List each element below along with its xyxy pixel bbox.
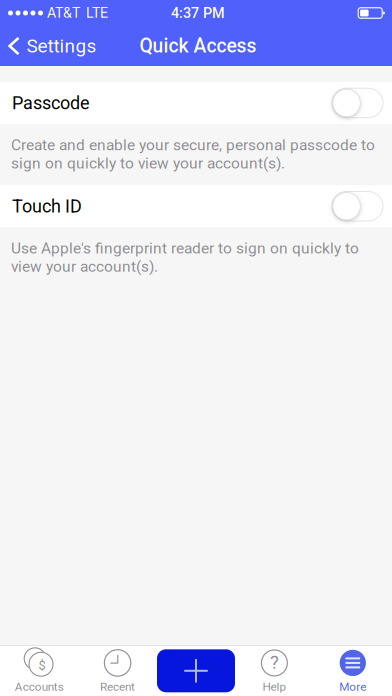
staticText: Touch ID: [12, 196, 82, 217]
staticText: Create and enable your secure, personal …: [11, 136, 375, 172]
button[interactable]: Recent: [78, 645, 157, 696]
staticText: Passcode: [12, 92, 90, 114]
staticText: $: [38, 658, 45, 673]
staticText: 4:37 PM: [171, 5, 225, 21]
staticText: Quick Access: [139, 35, 256, 57]
staticText: LTE: [86, 5, 108, 21]
staticText: Recent: [100, 680, 135, 694]
button[interactable]: More: [314, 645, 392, 696]
staticText: Settings: [26, 35, 96, 57]
staticText: AT&T: [47, 5, 80, 21]
button[interactable]: $: [0, 645, 78, 696]
staticText: Help: [262, 680, 286, 694]
staticText: More: [339, 680, 366, 694]
staticText: ?: [270, 651, 279, 673]
button[interactable]: Settings: [0, 29, 106, 63]
button[interactable]: ?: [235, 645, 314, 696]
staticText: Accounts: [15, 680, 64, 694]
button[interactable]: Touch ID: [0, 185, 392, 227]
button[interactable]: Add: [157, 645, 235, 696]
button[interactable]: Passcode: [0, 82, 392, 124]
staticText: Use Apple's fingerprint reader to sign o…: [11, 239, 359, 275]
